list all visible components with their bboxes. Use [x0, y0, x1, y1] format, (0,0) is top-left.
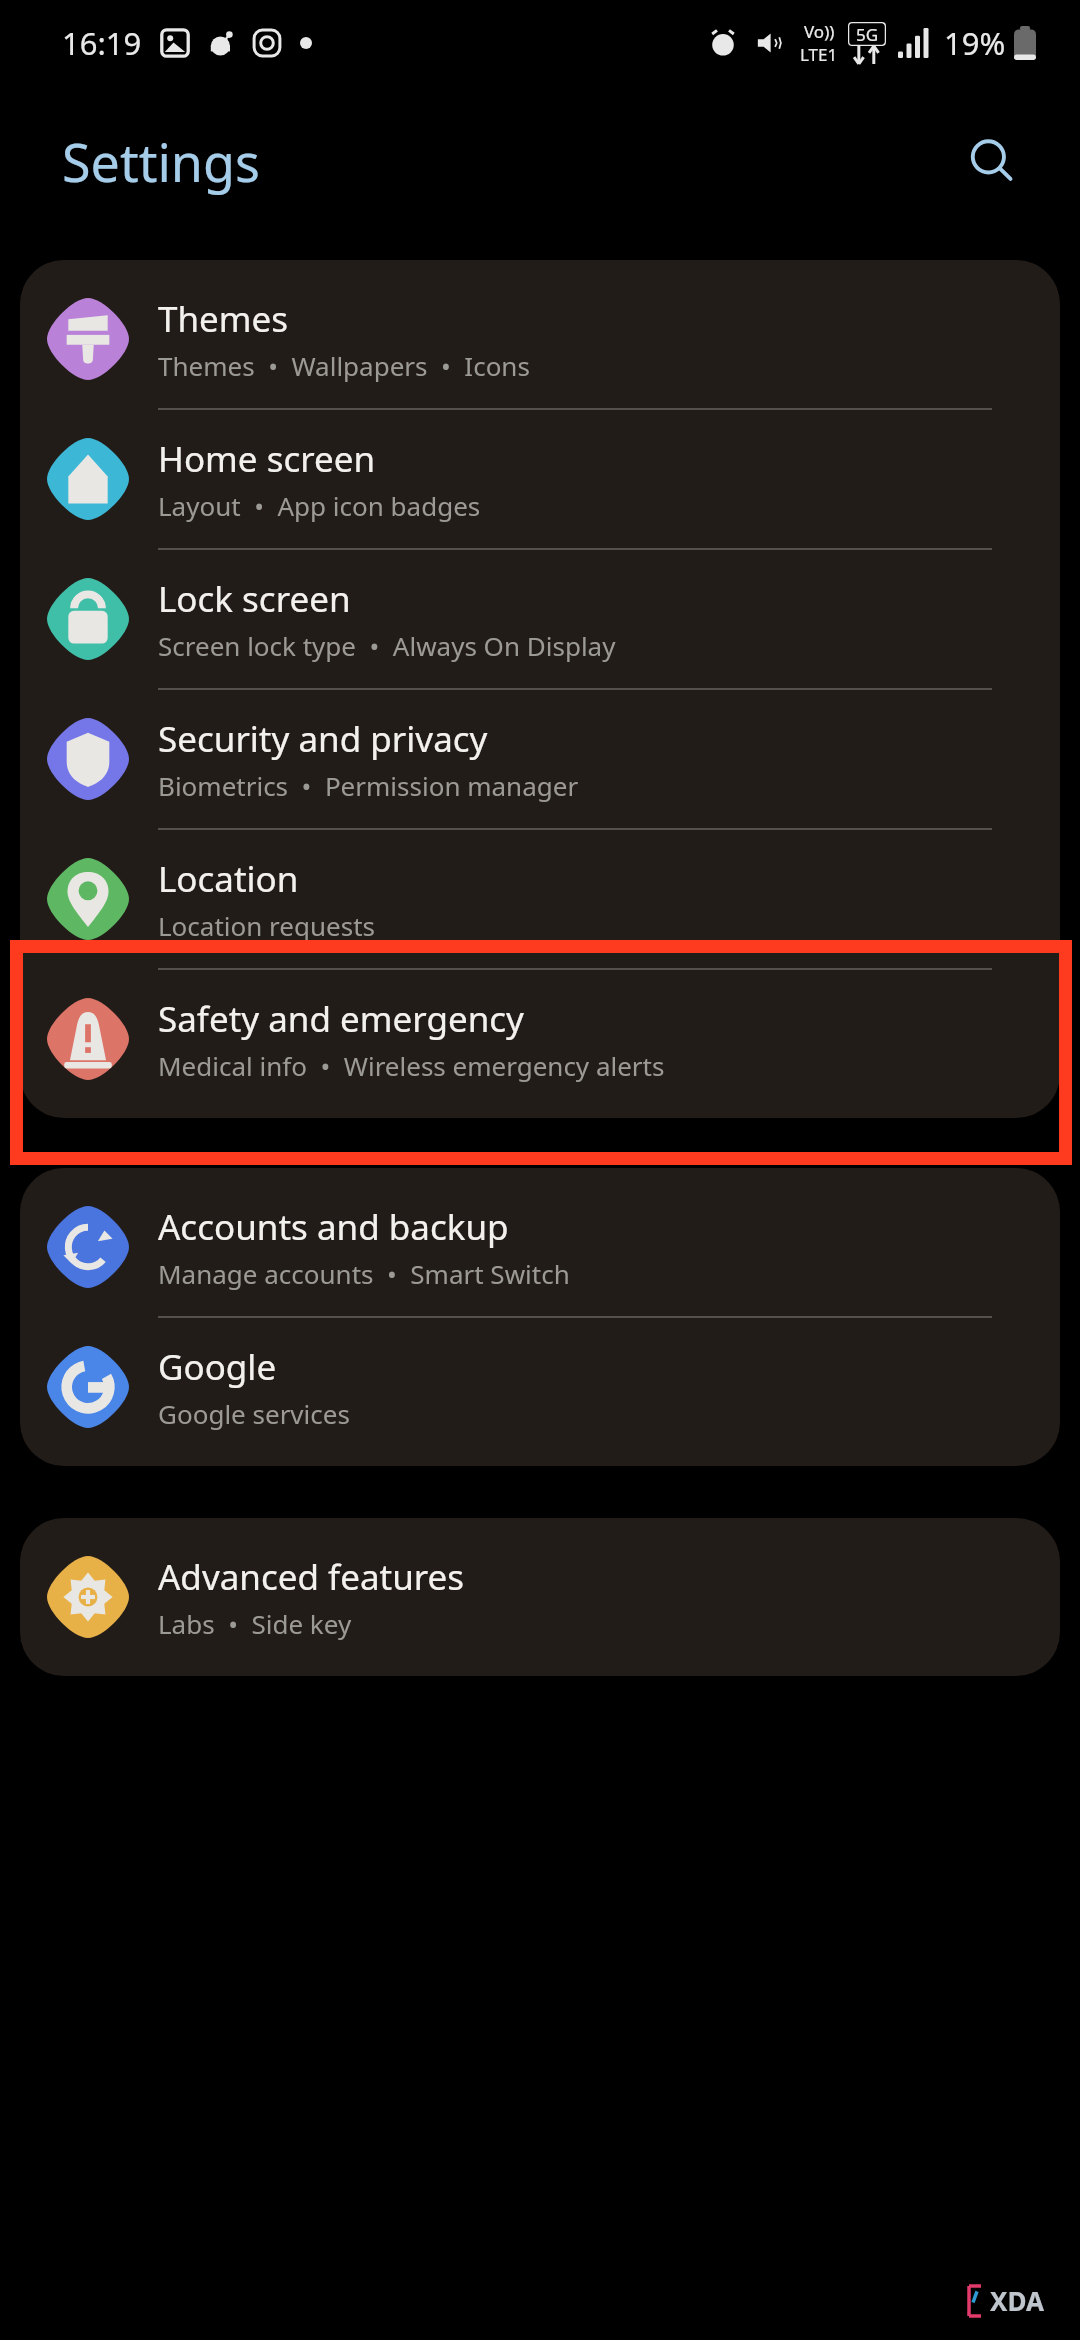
staticText: Vo)): [804, 20, 835, 43]
button[interactable]: Advanced features: [20, 1528, 1060, 1666]
staticText: Home screen: [158, 435, 376, 483]
staticText: Medical info • Wireless emergency alerts: [158, 1048, 665, 1083]
staticText: Google services: [158, 1396, 350, 1431]
staticText: Themes • Wallpapers • Icons: [158, 348, 530, 383]
staticText: Accounts and backup: [158, 1203, 509, 1251]
staticText: Themes: [158, 295, 289, 343]
button[interactable]: Lock screen: [20, 550, 1060, 688]
button[interactable]: Themes: [20, 270, 1060, 408]
staticText: Advanced features: [158, 1553, 465, 1601]
staticText: Location: [158, 855, 299, 903]
staticText: Lock screen: [158, 575, 351, 623]
button[interactable]: Safety and emergency: [20, 970, 1060, 1108]
staticText: Labs • Side key: [158, 1606, 352, 1641]
staticText: Manage accounts • Smart Switch: [158, 1256, 570, 1291]
staticText: Biometrics • Permission manager: [158, 768, 579, 803]
staticText: Location requests: [158, 908, 375, 943]
staticText: LTE1: [800, 43, 838, 66]
staticText: Settings: [62, 126, 260, 197]
staticText: Safety and emergency: [158, 995, 524, 1043]
staticText: Screen lock type • Always On Display: [158, 628, 616, 663]
staticText: Layout • App icon badges: [158, 488, 481, 523]
button[interactable]: Security and privacy: [20, 690, 1060, 828]
staticText: XDA: [990, 2283, 1044, 2318]
button[interactable]: Search: [956, 125, 1028, 197]
button[interactable]: Accounts and backup: [20, 1178, 1060, 1316]
staticText: Google: [158, 1343, 277, 1391]
button[interactable]: Location: [20, 830, 1060, 968]
staticText: Security and privacy: [158, 715, 488, 763]
button[interactable]: Home screen: [20, 410, 1060, 548]
staticText: 19%: [944, 22, 1006, 64]
staticText: 5G: [856, 23, 879, 46]
staticText: 16:19: [62, 22, 142, 64]
button[interactable]: Google: [20, 1318, 1060, 1456]
